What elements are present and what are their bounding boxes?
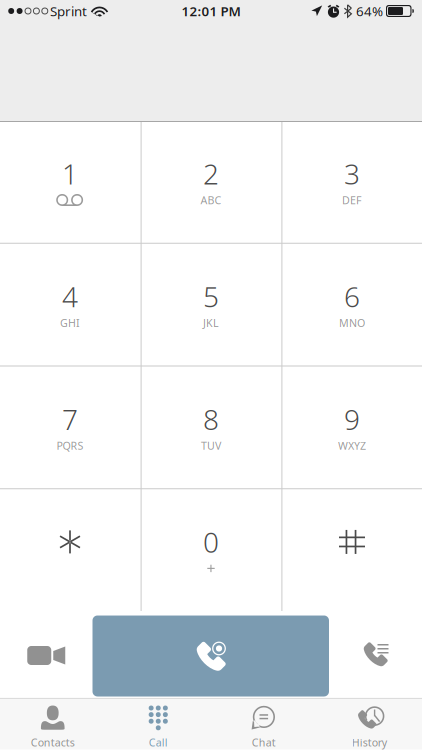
staticText: GHI: [60, 316, 80, 330]
button[interactable]: 7: [0, 366, 140, 488]
staticText: ABC: [200, 193, 221, 207]
staticText: 7: [62, 401, 78, 438]
button[interactable]: Call: [92, 611, 329, 698]
button[interactable]: 6: [282, 244, 422, 366]
button[interactable]: 8: [141, 366, 281, 488]
staticText: 3: [344, 155, 360, 192]
staticText: Contacts: [31, 735, 75, 749]
button[interactable]: Chat: [211, 698, 316, 749]
button[interactable]: Video call: [0, 611, 92, 698]
staticText: 2: [203, 155, 219, 192]
staticText: Sprint: [50, 2, 87, 20]
staticText: DEF: [342, 193, 362, 207]
button[interactable]: 1: [0, 121, 140, 243]
staticText: 6: [344, 278, 360, 315]
button[interactable]: Call: [105, 698, 211, 749]
button[interactable]: 9: [282, 366, 422, 488]
button[interactable]: 3: [282, 121, 422, 243]
staticText: 12:01 PM: [181, 2, 240, 20]
staticText: WXYZ: [338, 439, 366, 453]
button[interactable]: Call history: [329, 611, 422, 698]
button[interactable]: 5: [141, 244, 281, 366]
staticText: PQRS: [56, 439, 83, 453]
button[interactable]: 2: [141, 121, 281, 243]
staticText: 1: [62, 155, 78, 192]
staticText: Chat: [252, 735, 276, 749]
button[interactable]: Contacts: [0, 698, 105, 749]
button[interactable]: [282, 489, 422, 611]
staticText: 9: [344, 401, 360, 438]
staticText: 5: [203, 278, 219, 315]
staticText: TUV: [201, 439, 221, 453]
staticText: Call: [149, 735, 168, 749]
staticText: 8: [203, 401, 219, 438]
staticText: 4: [62, 278, 78, 315]
button[interactable]: [0, 489, 140, 611]
staticText: History: [352, 735, 387, 749]
staticText: JKL: [203, 316, 219, 330]
staticText: 64%: [356, 2, 383, 20]
button[interactable]: 4: [0, 244, 140, 366]
button[interactable]: History: [316, 698, 422, 749]
button[interactable]: 0: [141, 489, 281, 611]
staticText: 0: [203, 523, 219, 560]
staticText: MNO: [339, 316, 365, 330]
